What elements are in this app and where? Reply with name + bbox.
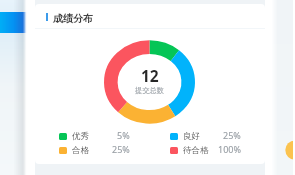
- staticText: 提交总数: [135, 86, 164, 95]
- staticText: 5%: [117, 129, 130, 139]
- button[interactable]: 优秀: [59, 131, 130, 141]
- staticText: 待合格: [183, 145, 209, 155]
- staticText: 100%: [218, 143, 241, 153]
- button[interactable]: 成绩分布: [35, 4, 265, 164]
- staticText: 成绩分布: [53, 12, 93, 25]
- button[interactable]: [265, 0, 295, 175]
- button[interactable]: [0, 0, 30, 175]
- staticText: 优秀: [72, 131, 89, 141]
- staticText: 25%: [112, 143, 130, 153]
- staticText: 良好: [183, 131, 200, 141]
- staticText: 合格: [72, 145, 89, 155]
- button[interactable]: 合格: [59, 145, 130, 155]
- button[interactable]: 待合格: [170, 145, 241, 155]
- staticText: 25%: [223, 129, 241, 139]
- button[interactable]: 良好: [170, 131, 241, 141]
- staticText: 12: [141, 65, 159, 83]
